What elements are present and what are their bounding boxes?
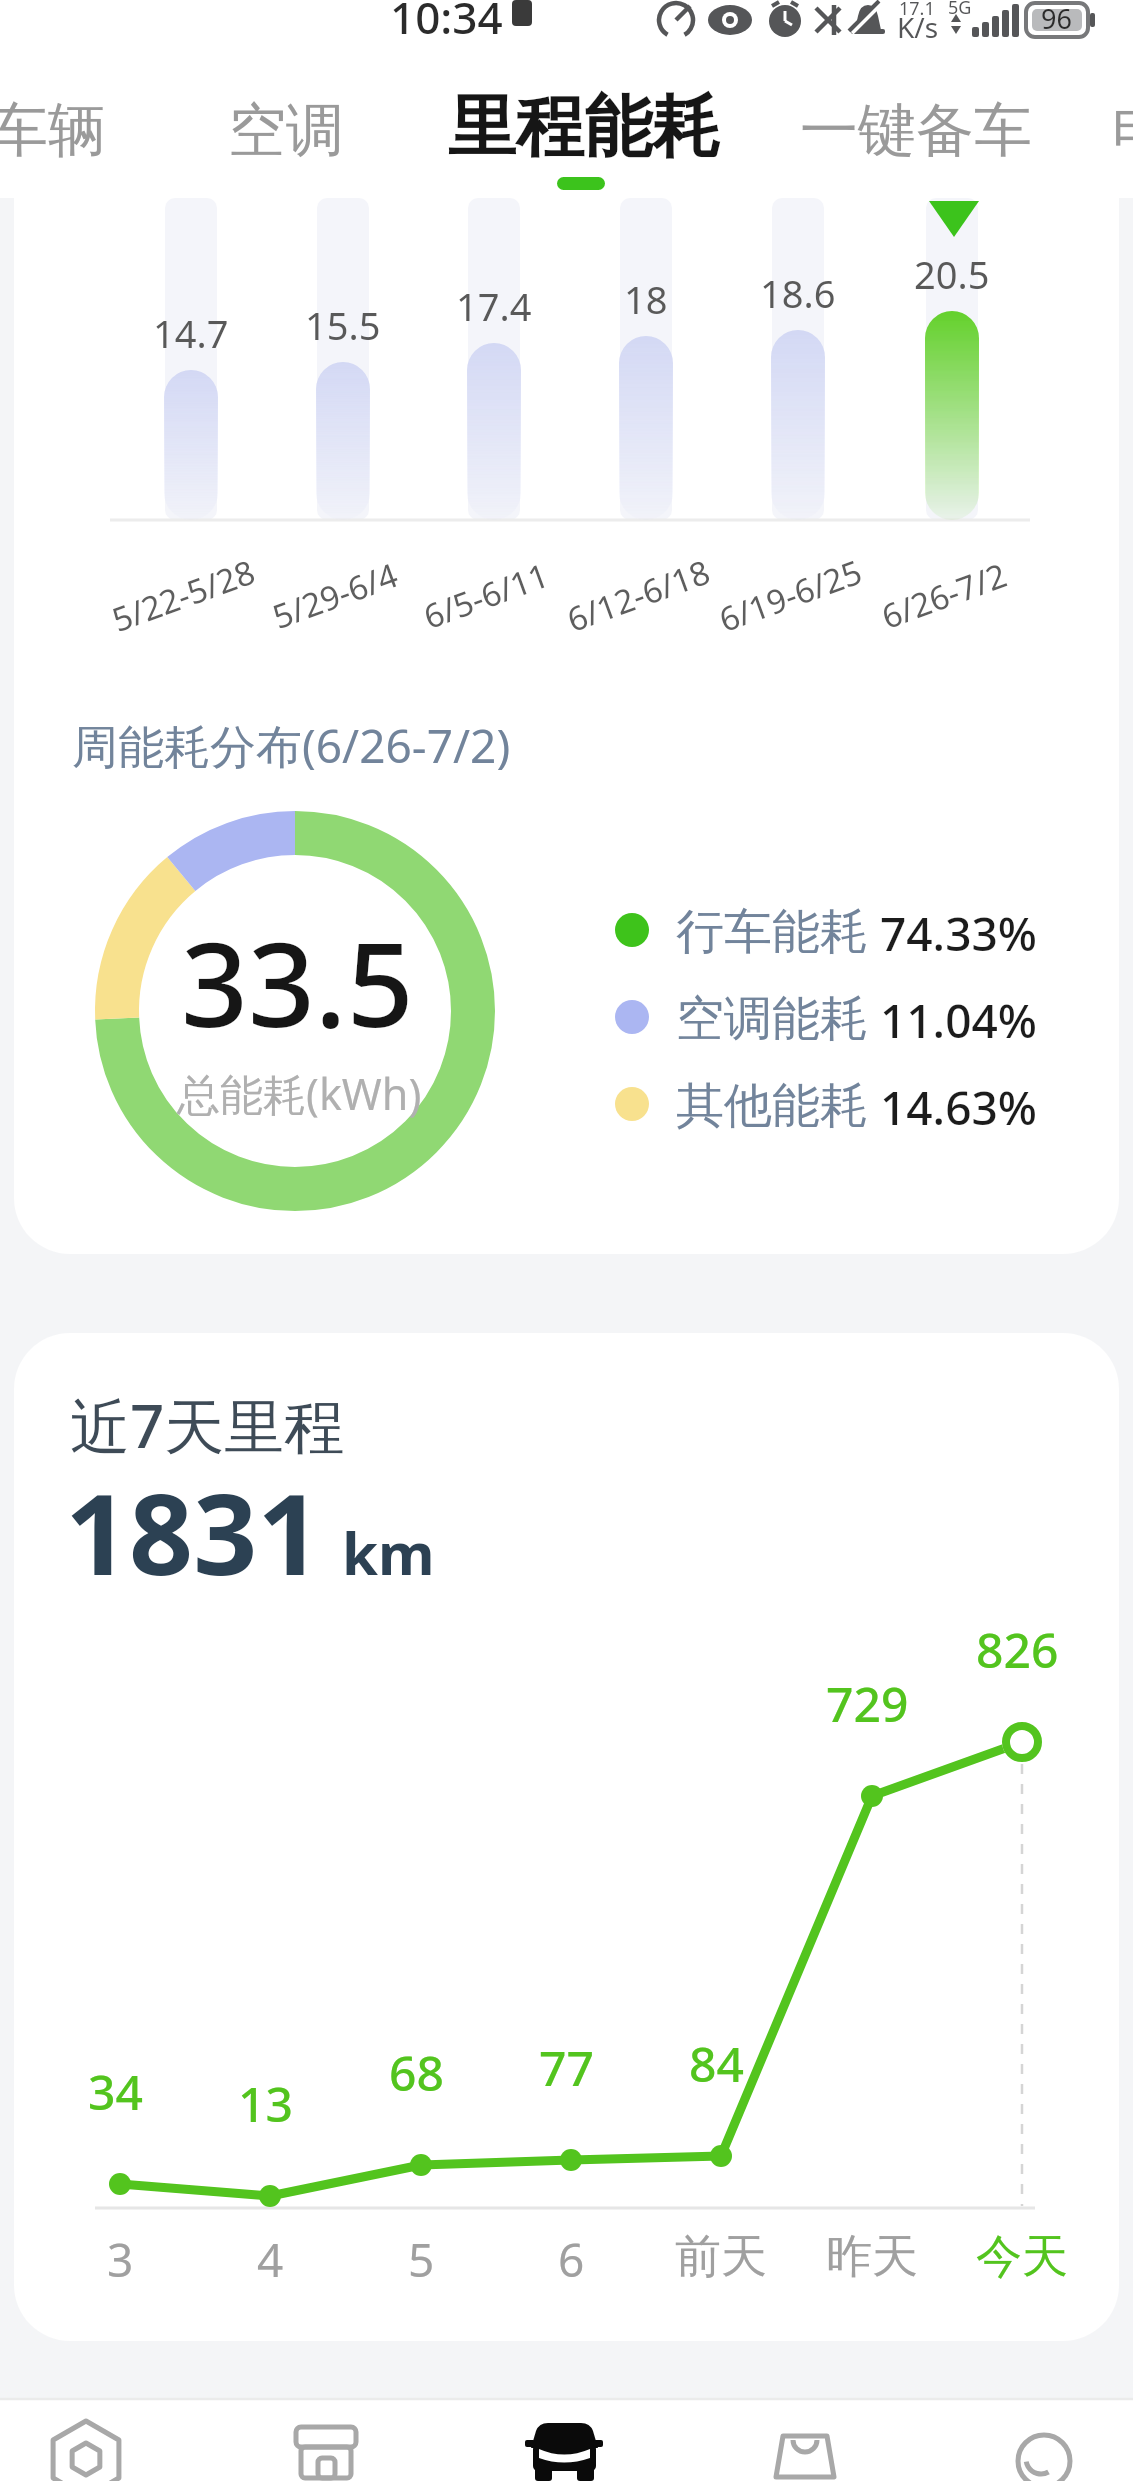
staticText: 68	[389, 2040, 444, 2105]
staticText: 74.33%	[880, 902, 1037, 965]
staticText: 空调	[228, 94, 344, 167]
staticText: 33.5	[181, 902, 414, 1061]
staticText: 一键备车	[800, 94, 1032, 167]
staticText: 空调能耗	[676, 989, 868, 1049]
staticText: 前天	[675, 2228, 767, 2286]
button[interactable]: 里程能耗	[448, 85, 720, 171]
staticText: 4	[257, 2228, 284, 2291]
staticText: 车辆	[0, 94, 106, 167]
button[interactable]	[678, 2400, 904, 2481]
staticText: 18.6	[760, 267, 836, 319]
staticText: 5	[408, 2228, 435, 2291]
staticText: 84	[689, 2031, 744, 2096]
staticText: 729	[826, 1671, 909, 1736]
button[interactable]	[904, 2400, 1130, 2481]
staticText: 今天	[976, 2228, 1068, 2286]
staticText: 行车能耗	[676, 902, 868, 962]
button[interactable]: 空调	[228, 94, 344, 167]
staticText: 96	[1041, 0, 1072, 37]
staticText: 周能耗分布(6/26-7/2)	[72, 714, 511, 777]
staticText: 14.63%	[880, 1076, 1037, 1139]
staticText: 826	[976, 1617, 1059, 1682]
button[interactable]: 车辆	[0, 94, 106, 167]
staticText: 6/5-6/11	[417, 552, 555, 639]
staticText: 77	[539, 2035, 594, 2100]
button[interactable]	[226, 2400, 452, 2481]
staticText: 20.5	[914, 248, 990, 300]
button[interactable]	[452, 2400, 678, 2481]
staticText: km	[342, 1513, 435, 1592]
staticText: 昨天	[826, 2228, 918, 2286]
staticText: 14.7	[153, 307, 229, 359]
staticText: 6/19-6/25	[713, 549, 868, 642]
staticText: 17.1	[899, 0, 935, 21]
button[interactable]	[0, 2400, 226, 2481]
staticText: 6/12-6/18	[561, 549, 716, 642]
staticText: 15.5	[305, 299, 381, 351]
staticText: 3	[107, 2228, 134, 2291]
staticText: 电池	[1112, 94, 1133, 167]
staticText: 6/26-7/2	[875, 552, 1013, 639]
staticText: 其他能耗	[676, 1076, 868, 1136]
staticText: 近7天里程	[70, 1384, 345, 1466]
staticText: 13	[238, 2071, 293, 2136]
staticText: 18	[624, 273, 668, 325]
staticText: 5/29-6/4	[266, 552, 404, 639]
staticText: K/s	[897, 8, 939, 46]
staticText: 5/22-5/28	[106, 549, 261, 642]
staticText: 6	[558, 2228, 585, 2291]
staticText: 总能耗(kWh)	[177, 1064, 422, 1123]
staticText: 34	[88, 2059, 143, 2124]
button[interactable]: 一键备车	[800, 94, 1032, 167]
staticText: 17.4	[456, 280, 532, 332]
staticText: 10:34	[390, 0, 503, 47]
staticText: 里程能耗	[448, 85, 720, 171]
staticText: 1831	[65, 1455, 322, 1608]
staticText: 11.04%	[880, 989, 1037, 1052]
staticText: 5G	[948, 0, 972, 20]
